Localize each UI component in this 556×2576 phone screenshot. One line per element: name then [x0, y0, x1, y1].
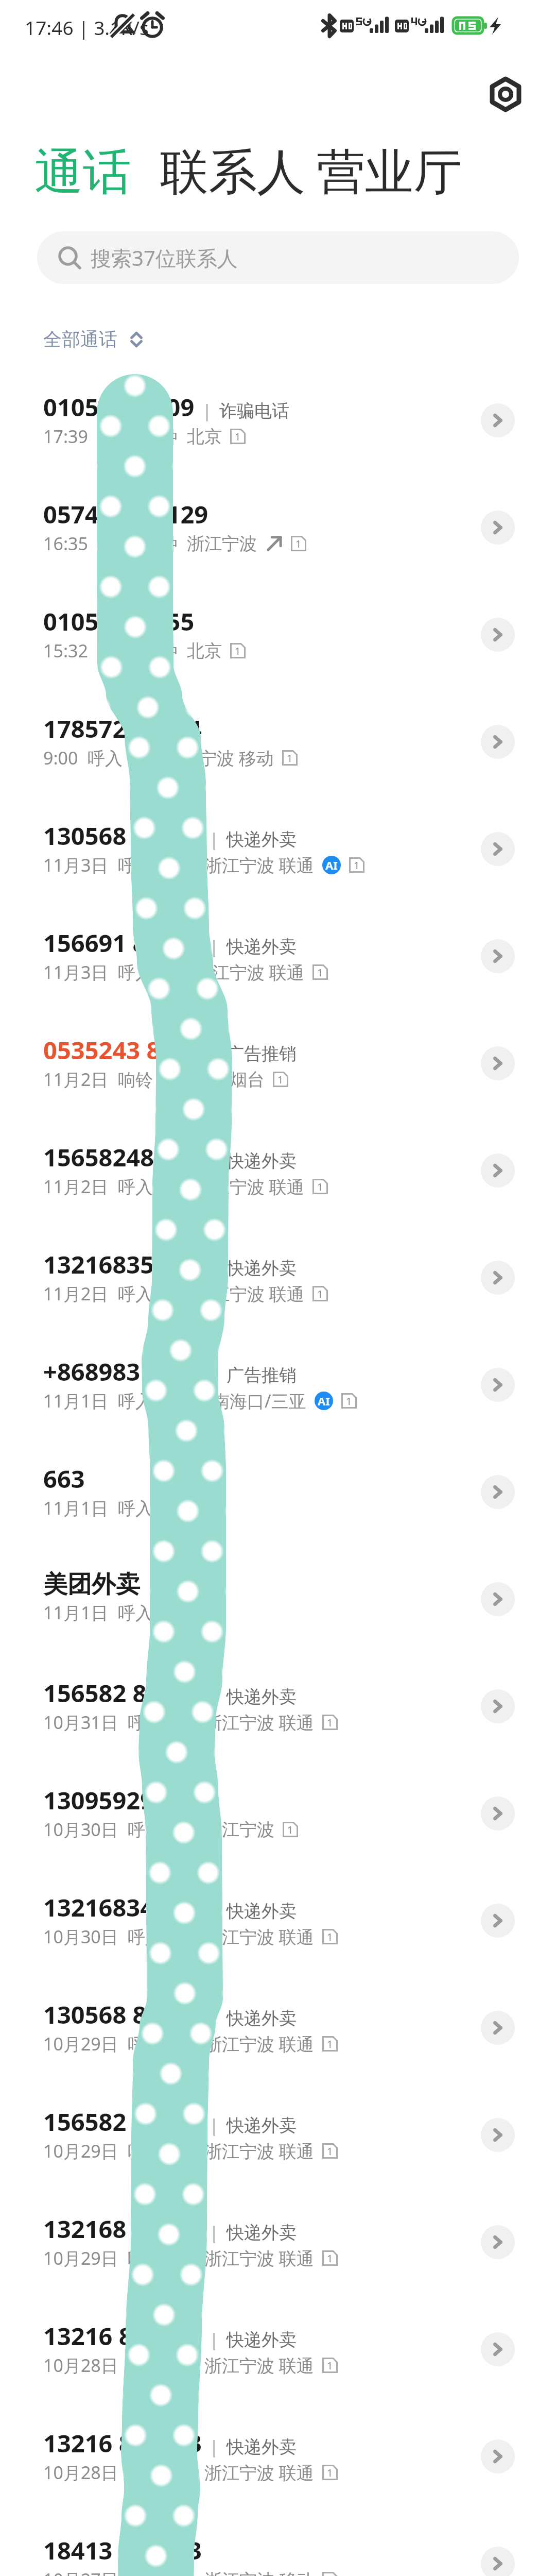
staticText: 1 — [346, 1394, 352, 1408]
button[interactable]: 营业厅 — [317, 142, 462, 202]
staticText: 呼入 2秒 — [128, 2353, 195, 2377]
button[interactable]: 15658248 765 — [0, 1117, 556, 1224]
button[interactable]: 18413 876543 — [0, 2510, 556, 2576]
staticText: 13095929 876 — [43, 1784, 202, 1817]
staticText: 呼入 3秒 — [128, 1710, 195, 1734]
button[interactable]: 0105 8765 55 — [0, 581, 556, 688]
staticText: 11月2日 — [43, 1175, 109, 1198]
button[interactable]: Open call details — [481, 2439, 515, 2473]
button[interactable]: 0105 8765 09 — [0, 367, 556, 474]
staticText: 浙江宁波 联通 — [204, 1710, 314, 1734]
button[interactable]: Open call details — [481, 725, 515, 759]
button[interactable]: Open call details — [481, 1689, 515, 1723]
staticText: 11月1日 — [43, 1389, 109, 1413]
button[interactable]: Open call details — [481, 511, 515, 545]
button[interactable]: Open call details — [481, 939, 515, 973]
staticText: 响铃 2秒 — [118, 1067, 185, 1091]
button[interactable]: Settings — [483, 72, 528, 117]
staticText: 诈骗电话 — [219, 400, 289, 422]
button[interactable]: 130568 87654 — [0, 1974, 556, 2081]
staticText: +868983 8754 — [43, 1355, 202, 1388]
button[interactable]: Open call details — [481, 1154, 515, 1188]
button[interactable]: 13216834 765 — [0, 1867, 556, 1974]
staticText: 156582 87659 — [43, 2105, 202, 2138]
button[interactable]: 搜索37位联系人 — [37, 231, 519, 284]
button[interactable]: 156582 87659 — [0, 2081, 556, 2189]
staticText: 1 — [235, 644, 241, 658]
staticText: 10月28日 — [43, 2353, 118, 2377]
staticText: 呼入 6秒 — [118, 1175, 185, 1198]
button[interactable]: 全部通话 — [43, 328, 145, 351]
button[interactable]: +868983 8754 — [0, 1331, 556, 1438]
staticText: 11月3日 — [43, 960, 109, 984]
staticText: 通话3分钟 — [97, 639, 178, 663]
button[interactable]: 联系人 — [160, 142, 305, 202]
staticText: 全部通话 — [43, 328, 117, 351]
button[interactable]: 美团外卖 — [0, 1546, 556, 1653]
button[interactable]: 0574 8765 129 — [0, 474, 556, 581]
staticText: 浙江宁波 联通 — [195, 1282, 304, 1306]
staticText: 13216834 765 — [43, 1891, 202, 1924]
staticText: 1 — [327, 2251, 333, 2265]
staticText: 呼入 8秒 — [88, 746, 155, 770]
staticText: 9:00 — [43, 746, 78, 770]
staticText: 11月2日 — [43, 1067, 109, 1091]
button[interactable]: 通话 — [34, 142, 131, 202]
button[interactable]: Open call details — [481, 1582, 515, 1616]
button[interactable]: 0535243 8765 — [0, 1010, 556, 1117]
button[interactable]: Open call details — [481, 1368, 515, 1402]
button[interactable]: 132168 87658 — [0, 2189, 556, 2296]
button[interactable]: Open call details — [481, 2547, 515, 2576]
staticText: 浙江宁波 联通 — [204, 2353, 314, 2377]
button[interactable]: Open call details — [481, 1904, 515, 1938]
button[interactable]: Open call details — [481, 2011, 515, 2045]
button[interactable]: 13095929 876 — [0, 1760, 556, 1867]
button[interactable]: 156691 87654 — [0, 903, 556, 1010]
staticText: 663 — [43, 1462, 85, 1495]
staticText: 130568 43217 — [43, 819, 202, 852]
staticText: 1 — [296, 537, 302, 551]
staticText: 1 — [198, 1501, 204, 1515]
button[interactable]: Open call details — [481, 2118, 515, 2152]
button[interactable]: Open call details — [481, 1797, 515, 1831]
staticText: 浙江宁波 联通 — [195, 1175, 304, 1198]
button[interactable]: Open call details — [481, 1046, 515, 1080]
button[interactable]: 156582 87654 — [0, 1653, 556, 1760]
button[interactable]: 13216835 876 — [0, 1224, 556, 1331]
button[interactable]: Open call details — [481, 2225, 515, 2259]
button[interactable]: Open call details — [481, 403, 515, 437]
staticText: 浙江宁波 — [187, 533, 257, 555]
staticText: 10月30日 — [43, 1818, 118, 1841]
button[interactable]: Open call details — [481, 1261, 515, 1295]
staticText: 呼入 9秒 — [118, 960, 185, 984]
staticText: 16:35 — [43, 532, 88, 555]
button[interactable]: Open call details — [481, 618, 515, 652]
staticText: 17:46 | 3.1K/s — [25, 14, 149, 40]
staticText: 11月3日 — [43, 853, 109, 877]
staticText: 呼入 4秒 — [118, 1389, 185, 1413]
staticText: 快递外卖 — [227, 936, 297, 958]
staticText: 美团外卖 — [43, 1569, 140, 1600]
staticText: 1 — [327, 2037, 333, 2051]
staticText: 呼入 12秒 — [118, 853, 195, 877]
staticText: 1 — [327, 1930, 333, 1944]
staticText: 呼入 4秒 — [128, 2139, 195, 2163]
staticText: 178572 87654 — [43, 712, 202, 745]
button[interactable]: 178572 87654 — [0, 688, 556, 795]
staticText: 快递外卖 — [227, 1257, 297, 1279]
staticText: 1 — [354, 858, 360, 872]
button[interactable]: Open call details — [481, 2332, 515, 2366]
staticText: 10月29日 — [43, 2246, 118, 2270]
staticText: 1 — [235, 430, 241, 444]
staticText: 呼入 5秒 — [128, 2032, 195, 2056]
button[interactable]: Open call details — [481, 832, 515, 866]
button[interactable]: 13216 876543 — [0, 2403, 556, 2510]
staticText: 13216 876542 — [43, 2319, 202, 2352]
button[interactable]: Open call details — [481, 1475, 515, 1509]
staticText: 18413 876543 — [43, 2534, 202, 2567]
button[interactable]: 13216 876542 — [0, 2296, 556, 2403]
button[interactable]: 130568 43217 — [0, 795, 556, 903]
staticText: 呼入 6秒 — [128, 2461, 195, 2484]
button[interactable]: 663 — [0, 1438, 556, 1546]
